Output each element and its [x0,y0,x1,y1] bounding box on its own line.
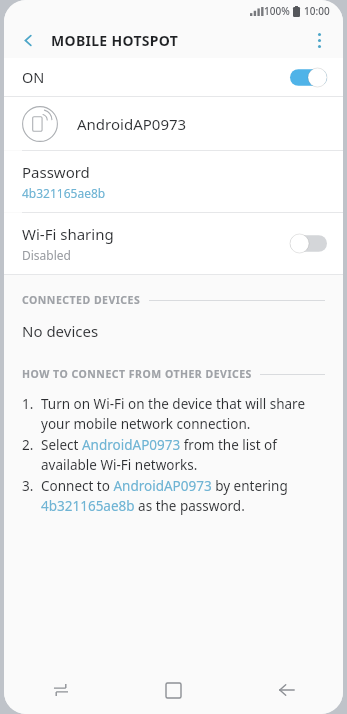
staticText: AndroidAP0973 [77,114,187,134]
staticText: 10:00 [304,4,330,18]
button[interactable]: Back [12,24,44,56]
button[interactable]: Home [117,666,230,714]
staticText: Wi-Fi sharing [22,224,114,244]
button[interactable]: AndroidAP0973 [4,97,343,150]
staticText: MOBILE HOTSPOT [51,31,179,50]
staticText: Select AndroidAP0973 from the list of av… [41,436,323,474]
staticText: Turn on Wi-Fi on the device that will sh… [41,395,323,433]
staticText: 1. [22,395,41,413]
staticText: Disabled [22,247,71,263]
button[interactable]: Wi-Fi sharing [4,213,343,274]
button[interactable]: Password [4,151,343,212]
button[interactable]: Back [230,666,343,714]
staticText: 2. [22,436,41,454]
staticText: CONNECTED DEVICES [22,293,141,307]
button[interactable]: ON [4,58,343,96]
staticText: 3. [22,477,41,495]
staticText: Password [22,162,90,182]
staticText: Connect to AndroidAP0973 by entering 4b3… [41,477,323,515]
staticText: 4b321165ae8b [22,185,106,201]
button[interactable]: More options [303,24,335,56]
staticText: HOW TO CONNECT FROM OTHER DEVICES [22,367,252,381]
staticText: ON [22,67,45,87]
button[interactable]: Recents [4,666,117,714]
staticText: No devices [22,321,99,341]
staticText: 100% [264,4,290,18]
